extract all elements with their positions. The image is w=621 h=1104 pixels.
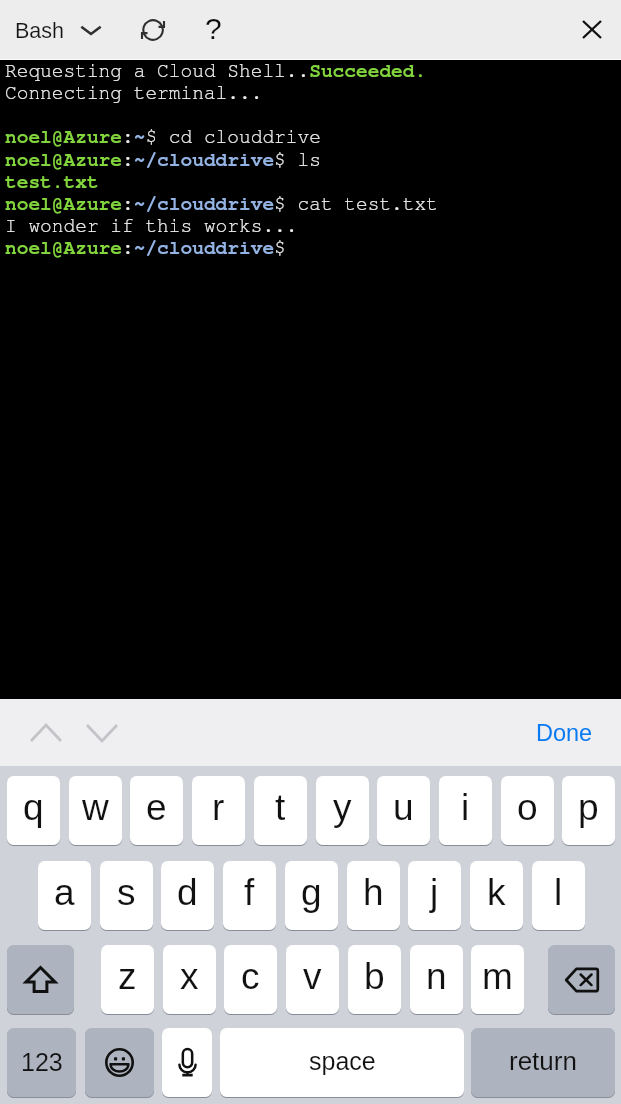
staticText: return [509,1046,577,1075]
button[interactable]: m [471,945,524,1014]
button[interactable]: d [161,861,214,930]
button[interactable]: Backspace [548,945,615,1014]
button[interactable]: return [471,1028,615,1097]
staticText: space [309,1047,376,1075]
staticText: ? [205,12,222,46]
button[interactable]: t [254,776,307,845]
button[interactable]: k [470,861,523,930]
button[interactable]: Help [190,0,236,59]
button[interactable]: Shift [7,945,74,1014]
staticText: d [177,872,198,913]
staticText: Done [536,720,593,746]
staticText: m [482,956,513,997]
staticText: z [118,956,137,997]
staticText: Connecting terminal... [5,83,263,103]
staticText: h [363,872,384,913]
staticText: x [180,956,199,997]
staticText: noel@Azure:~/clouddrive$ cat test.txt [5,194,438,214]
staticText: c [241,956,260,997]
button[interactable]: Next field [78,699,125,766]
staticText: u [393,787,414,828]
button[interactable]: space [220,1028,464,1097]
button[interactable]: Previous field [22,699,69,766]
staticText: i [461,787,470,828]
staticText: r [212,787,225,828]
staticText: noel@Azure:~$ cd clouddrive [5,127,321,147]
button[interactable]: a [38,861,91,930]
button[interactable]: o [501,776,554,845]
staticText: k [487,872,506,913]
staticText: f [244,872,255,913]
button[interactable]: r [192,776,245,845]
button[interactable]: h [347,861,400,930]
staticText: v [303,956,322,997]
staticText: w [82,787,109,828]
button[interactable]: Dictation [162,1028,212,1097]
staticText: l [554,872,563,913]
button[interactable]: g [285,861,338,930]
button[interactable]: q [7,776,60,845]
button[interactable]: j [408,861,461,930]
button[interactable]: f [223,861,276,930]
button[interactable]: v [286,945,339,1014]
button[interactable]: e [130,776,183,845]
staticText: g [301,872,322,913]
staticText: a [54,872,75,913]
button[interactable]: p [562,776,615,845]
button[interactable]: 123 [7,1028,76,1097]
button[interactable]: Bash [6,0,114,59]
staticText: noel@Azure:~/clouddrive$ [5,238,286,258]
staticText: o [517,787,538,828]
button[interactable]: c [224,945,277,1014]
staticText: e [146,787,167,828]
staticText: I wonder if this works... [5,216,298,236]
staticText: test.txt [5,172,99,192]
staticText: j [430,872,439,913]
button[interactable]: i [439,776,492,845]
staticText: y [333,787,352,828]
button[interactable]: w [69,776,122,845]
staticText: Requesting a Cloud Shell..Succeeded. [5,61,427,81]
button[interactable]: x [163,945,216,1014]
button[interactable]: l [532,861,585,930]
button[interactable]: Done [536,699,593,766]
button[interactable]: y [316,776,369,845]
button[interactable]: u [377,776,430,845]
staticText: p [578,787,599,828]
staticText: noel@Azure:~/clouddrive$ ls [5,150,321,170]
button[interactable]: Close [563,0,621,59]
staticText: s [117,872,136,913]
button[interactable]: s [100,861,153,930]
staticText: b [364,956,385,997]
button[interactable]: Emoji [85,1028,154,1097]
staticText: q [23,787,44,828]
button[interactable]: z [101,945,154,1014]
button[interactable]: Restart [130,0,176,59]
staticText: t [275,787,286,828]
staticText: Bash [15,19,65,43]
staticText: n [426,956,447,997]
staticText: 123 [21,1048,63,1076]
button[interactable]: n [410,945,463,1014]
button[interactable]: b [348,945,401,1014]
